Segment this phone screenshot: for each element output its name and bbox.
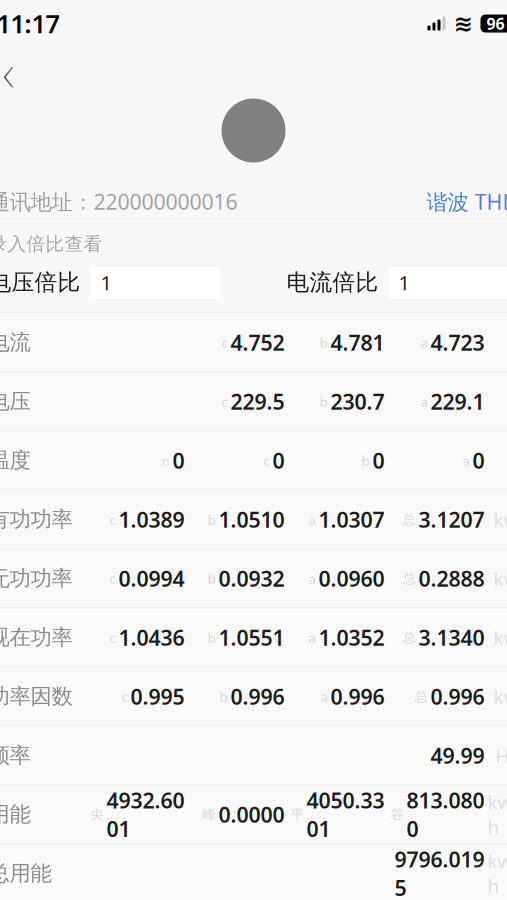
button[interactable]: 1 xyxy=(90,266,220,298)
staticText: 0.996 xyxy=(430,682,484,711)
staticText: b xyxy=(319,393,327,410)
staticText: 总 xyxy=(402,570,415,587)
staticText: 1.0307 xyxy=(318,505,384,534)
staticText: Hz xyxy=(495,743,507,768)
staticText: b xyxy=(207,511,215,528)
staticText: c xyxy=(121,688,127,705)
staticText: c xyxy=(263,452,269,469)
staticText: c xyxy=(109,511,115,528)
staticText: 总 xyxy=(402,511,415,528)
staticText: 4.752 xyxy=(230,328,284,357)
staticText: 1.0436 xyxy=(118,623,184,652)
staticText: 0 xyxy=(372,446,384,475)
staticText: 无功功率 xyxy=(0,565,72,592)
staticText: 9796.0195 xyxy=(394,845,484,900)
staticText: 4932.6001 xyxy=(106,786,184,843)
staticText: 用能 xyxy=(0,801,30,828)
staticText: 通讯地址：220000000016 xyxy=(0,187,237,216)
staticText: b xyxy=(319,334,327,351)
staticText: a xyxy=(462,452,469,469)
button[interactable]: 1 xyxy=(388,266,507,298)
staticText: kw xyxy=(493,625,507,650)
staticText: kw xyxy=(493,684,507,709)
staticText: 229.1 xyxy=(430,387,484,416)
staticText: 4.723 xyxy=(430,328,484,357)
staticText: kwh xyxy=(487,849,507,898)
staticText: 0.996 xyxy=(330,682,384,711)
staticText: 谐波 THD xyxy=(426,187,507,216)
staticText: 0 xyxy=(272,446,284,475)
staticText: 录入倍比查看 xyxy=(0,232,102,255)
staticText: 电流 xyxy=(0,329,30,356)
staticText: b xyxy=(361,452,369,469)
staticText: 0.0994 xyxy=(118,564,184,593)
staticText: a xyxy=(308,629,315,646)
staticText: 总用能 xyxy=(0,860,51,887)
button[interactable]: 谐波 THD xyxy=(426,187,507,216)
staticText: 平 xyxy=(290,806,303,823)
staticText: 3.1207 xyxy=(418,505,484,534)
staticText: 电压倍比 xyxy=(0,268,80,296)
staticText: 4050.3301 xyxy=(306,786,384,843)
staticText: n xyxy=(161,452,169,469)
staticText: 1 xyxy=(398,269,409,296)
staticText: b xyxy=(207,570,215,587)
staticText: ≋ xyxy=(454,11,473,36)
staticText: 1.0551 xyxy=(218,623,284,652)
staticText: 频率 xyxy=(0,742,30,769)
staticText: a xyxy=(420,393,427,410)
staticText: 0.2888 xyxy=(418,564,484,593)
staticText: 1 xyxy=(100,269,111,296)
staticText: 1.0510 xyxy=(218,505,284,534)
staticText: 电压 xyxy=(0,388,30,415)
staticText: a xyxy=(320,688,327,705)
staticText: kwh xyxy=(487,790,507,839)
staticText: 1.0389 xyxy=(118,505,184,534)
staticText: 230.7 xyxy=(330,387,384,416)
staticText: 电流倍比 xyxy=(286,268,378,296)
staticText: kw xyxy=(493,566,507,591)
staticText: c xyxy=(221,334,227,351)
staticText: 4.781 xyxy=(330,328,384,357)
staticText: 229.5 xyxy=(230,387,284,416)
staticText: 视在功率 xyxy=(0,624,72,651)
staticText: c xyxy=(109,570,115,587)
staticText: b xyxy=(219,688,227,705)
staticText: 尖 xyxy=(90,806,103,823)
staticText: 功率因数 xyxy=(0,683,72,710)
staticText: a xyxy=(308,511,315,528)
staticText: 0.995 xyxy=(130,682,184,711)
staticText: 0.996 xyxy=(230,682,284,711)
staticText: 总 xyxy=(414,688,427,705)
button[interactable]: Back xyxy=(0,49,30,93)
staticText: a xyxy=(308,570,315,587)
staticText: 峰 xyxy=(202,806,215,823)
staticText: a xyxy=(420,334,427,351)
staticText: 有功功率 xyxy=(0,506,72,533)
staticText: 谷 xyxy=(390,806,403,823)
staticText: 3.1340 xyxy=(418,623,484,652)
staticText: c xyxy=(221,393,227,410)
staticText: ‹ xyxy=(2,36,14,107)
staticText: 96 xyxy=(486,13,504,34)
staticText: 总 xyxy=(402,629,415,646)
staticText: b xyxy=(207,629,215,646)
staticText: 0.0960 xyxy=(318,564,384,593)
staticText: c xyxy=(109,629,115,646)
staticText: 温度 xyxy=(0,447,30,474)
staticText: 0 xyxy=(472,446,484,475)
staticText: 49.99 xyxy=(430,741,484,770)
staticText: 11:17 xyxy=(0,7,59,40)
staticText: 0.0000 xyxy=(218,800,284,829)
staticText: 813.0800 xyxy=(406,786,484,843)
staticText: 1.0352 xyxy=(318,623,384,652)
staticText: kw xyxy=(493,507,507,532)
staticText: 0.0932 xyxy=(218,564,284,593)
staticText: 0 xyxy=(172,446,184,475)
